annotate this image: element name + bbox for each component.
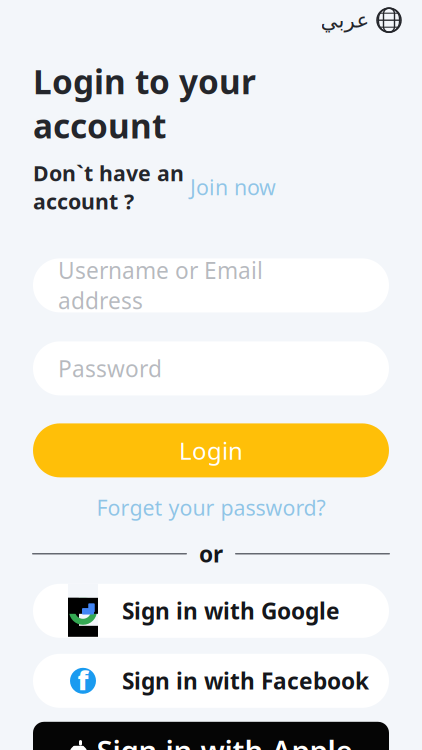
- staticText: Forget your password?: [96, 493, 325, 522]
- staticText: Password: [58, 353, 162, 383]
- staticText: Username or Email address: [58, 255, 263, 315]
- button[interactable]: Switch language to Arabic: [314, 3, 408, 37]
- staticText: or: [199, 539, 223, 569]
- button[interactable]: Sign in with Apple: [33, 722, 389, 750]
- button[interactable]: Login: [33, 423, 389, 477]
- staticText: Sign in with Apple: [96, 731, 352, 750]
- button[interactable]: Sign in with Google: [33, 584, 389, 638]
- button[interactable]: Join now: [184, 173, 276, 201]
- staticText: Sign in with Google: [122, 596, 340, 626]
- staticText: Login: [179, 434, 243, 466]
- button[interactable]: f: [33, 654, 389, 708]
- staticText: عربي: [320, 8, 369, 32]
- staticText: Don`t have an account ?: [33, 159, 184, 215]
- button[interactable]: Username or Email address: [33, 258, 389, 312]
- staticText: Sign in with Facebook: [122, 666, 369, 696]
- button[interactable]: Forget your password?: [88, 489, 333, 526]
- button[interactable]: Password: [33, 341, 389, 395]
- staticText: f: [77, 662, 88, 697]
- staticText: Join now: [184, 173, 276, 201]
- staticText: Login to your account: [33, 59, 256, 148]
